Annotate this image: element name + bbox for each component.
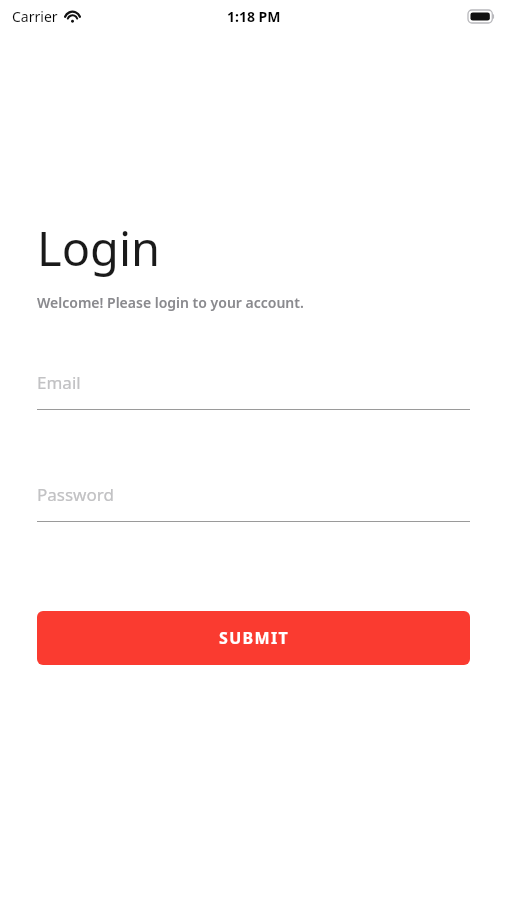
button[interactable]: Email [37,365,470,410]
staticText: Login [37,216,161,280]
other: Battery [468,10,495,23]
staticText: SUBMIT [219,627,289,649]
staticText: Welcome! Please login to your account. [37,293,304,312]
staticText: Carrier [12,7,58,26]
button[interactable]: SUBMIT [37,611,470,665]
staticText: Email [37,371,81,394]
staticText: 1:18 PM [227,7,281,26]
staticText: Password [37,483,114,506]
button[interactable]: Password [37,477,470,522]
